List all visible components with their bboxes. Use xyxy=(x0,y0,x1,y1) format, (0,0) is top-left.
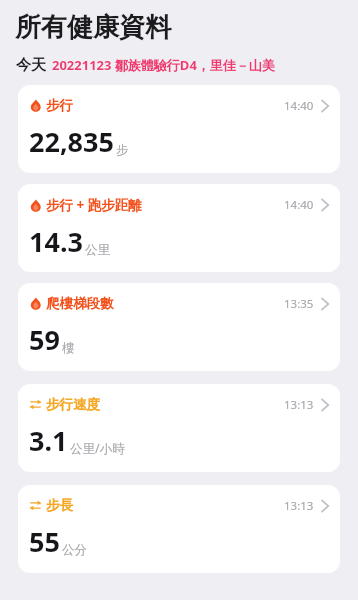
button[interactable]: 步行速度 xyxy=(18,384,340,472)
staticText: 樓 xyxy=(62,340,75,356)
staticText: 55 xyxy=(29,523,60,560)
staticText: 14:40 xyxy=(284,197,314,213)
staticText: 公里 xyxy=(85,242,110,258)
staticText: 步長 xyxy=(46,497,73,514)
staticText: 3.1 xyxy=(29,422,68,459)
staticText: 步行 + 跑步距離 xyxy=(46,196,142,214)
staticText: 14:40 xyxy=(284,98,314,114)
staticText: 公里/小時 xyxy=(70,440,125,457)
staticText: 20221123 鄒族體驗行D4，里佳－山美 xyxy=(52,56,275,74)
staticText: 13:13 xyxy=(284,397,314,413)
staticText: 爬樓梯段數 xyxy=(46,295,114,312)
staticText: 步 xyxy=(116,142,129,158)
button[interactable]: 步行 xyxy=(18,85,340,173)
staticText: 步行 xyxy=(46,97,73,114)
staticText: 22,835 xyxy=(29,123,114,160)
button[interactable]: 步行 + 跑步距離 xyxy=(18,184,340,272)
staticText: 所有健康資料 xyxy=(15,11,171,44)
staticText: 14.3 xyxy=(29,223,83,260)
staticText: 公分 xyxy=(62,542,87,558)
button[interactable]: 爬樓梯段數 xyxy=(18,283,340,371)
button[interactable]: 步長 xyxy=(18,485,340,573)
staticText: 今天 xyxy=(16,56,46,75)
staticText: 13:13 xyxy=(284,498,314,514)
staticText: 59 xyxy=(29,321,60,358)
staticText: 13:35 xyxy=(284,296,314,312)
staticText: 步行速度 xyxy=(46,396,100,413)
